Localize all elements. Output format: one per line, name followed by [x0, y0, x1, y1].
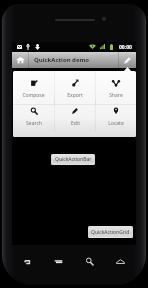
staticText: QuickActionBar	[55, 156, 92, 163]
button[interactable]: Menu	[43, 252, 74, 270]
button[interactable]: Search	[74, 252, 105, 270]
staticText: Locate	[108, 120, 124, 127]
staticText: 00:00	[119, 44, 132, 51]
button[interactable]: QuickActionBar	[51, 154, 95, 165]
button[interactable]: Locate	[96, 99, 136, 132]
staticText: Share	[109, 92, 123, 99]
button[interactable]: Home	[12, 52, 28, 68]
staticText: Compose	[22, 92, 45, 99]
button[interactable]: Back	[12, 252, 43, 270]
button[interactable]: Search	[13, 99, 54, 132]
staticText: Edit	[71, 120, 80, 127]
button[interactable]: Compose	[13, 71, 54, 104]
button[interactable]: Compose	[119, 52, 136, 68]
button[interactable]: QuickActionGrid	[88, 226, 133, 238]
button[interactable]: Edit	[55, 99, 95, 132]
button[interactable]: Export	[55, 71, 95, 104]
staticText: Export	[67, 92, 83, 99]
staticText: QuickActionGrid	[91, 229, 130, 236]
button[interactable]: Share	[96, 71, 136, 104]
staticText: Search	[26, 120, 42, 127]
button[interactable]: Home	[105, 252, 136, 270]
staticText: QuickAction demo	[34, 56, 90, 64]
